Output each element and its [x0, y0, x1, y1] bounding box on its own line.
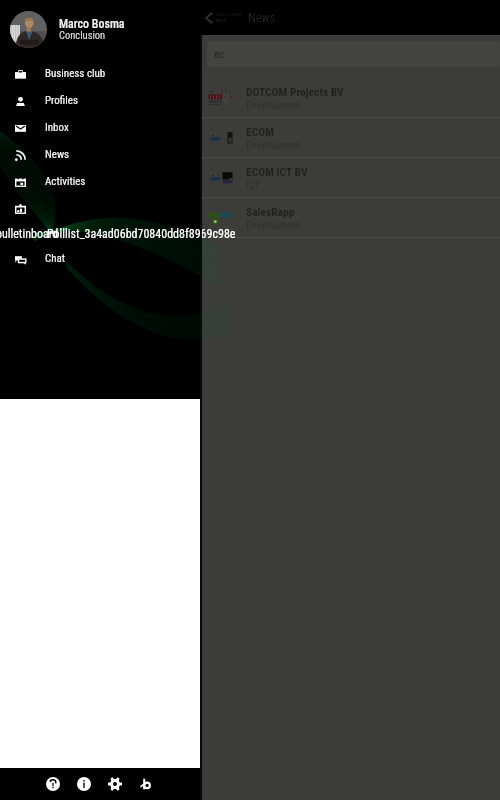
staticText: Marco Bosma	[59, 17, 125, 31]
button[interactable]: DOTCOM Projects BV	[0, 78, 500, 117]
staticText: News	[45, 148, 70, 161]
button[interactable]: Info	[73, 773, 95, 795]
button[interactable]: ECOM ICT BV	[0, 158, 500, 197]
button[interactable]: Business club	[0, 60, 200, 87]
staticText: ICT	[246, 179, 260, 191]
button[interactable]: Chat	[0, 245, 200, 272]
staticText: Development	[246, 139, 301, 151]
button[interactable]: bulletinboard	[0, 222, 200, 245]
staticText: SalesRapp	[246, 205, 295, 218]
button[interactable]: Back	[197, 6, 221, 30]
staticText: bulletinboard	[0, 227, 59, 241]
staticText: Development	[246, 99, 301, 111]
button[interactable]: Settings	[104, 773, 126, 795]
button[interactable]: SalesRapp	[0, 198, 500, 237]
staticText: Profiles	[45, 94, 78, 107]
button[interactable]	[0, 195, 200, 222]
button[interactable]: News	[0, 141, 200, 168]
button[interactable]: Profiles	[0, 87, 200, 114]
button[interactable]: Marco Bosma	[0, 10, 200, 49]
button[interactable]: Bulletin	[135, 773, 157, 795]
staticText: News	[248, 10, 276, 25]
staticText: Business club	[45, 67, 106, 80]
staticText: RAPP	[216, 18, 227, 23]
staticText: Polllist_3a4ad06bd70840dd8f8969c98e	[47, 227, 236, 241]
staticText: DOTCOM Projects BV	[246, 85, 344, 98]
button[interactable]: Help	[42, 773, 64, 795]
staticText: Development	[246, 219, 301, 231]
staticText: Activities	[45, 175, 86, 188]
staticText: Inbox	[45, 121, 69, 134]
button[interactable]: Inbox	[0, 114, 200, 141]
button[interactable]: ECOM	[0, 118, 500, 157]
staticText: ec	[214, 48, 225, 61]
button[interactable]: Activities	[0, 168, 200, 195]
staticText: Chat	[45, 252, 66, 265]
staticText: CONCLUSION	[216, 12, 242, 17]
staticText: Conclusion	[59, 29, 106, 41]
staticText: ECOM ICT BV	[246, 165, 308, 178]
staticText: ECOM	[246, 125, 274, 138]
